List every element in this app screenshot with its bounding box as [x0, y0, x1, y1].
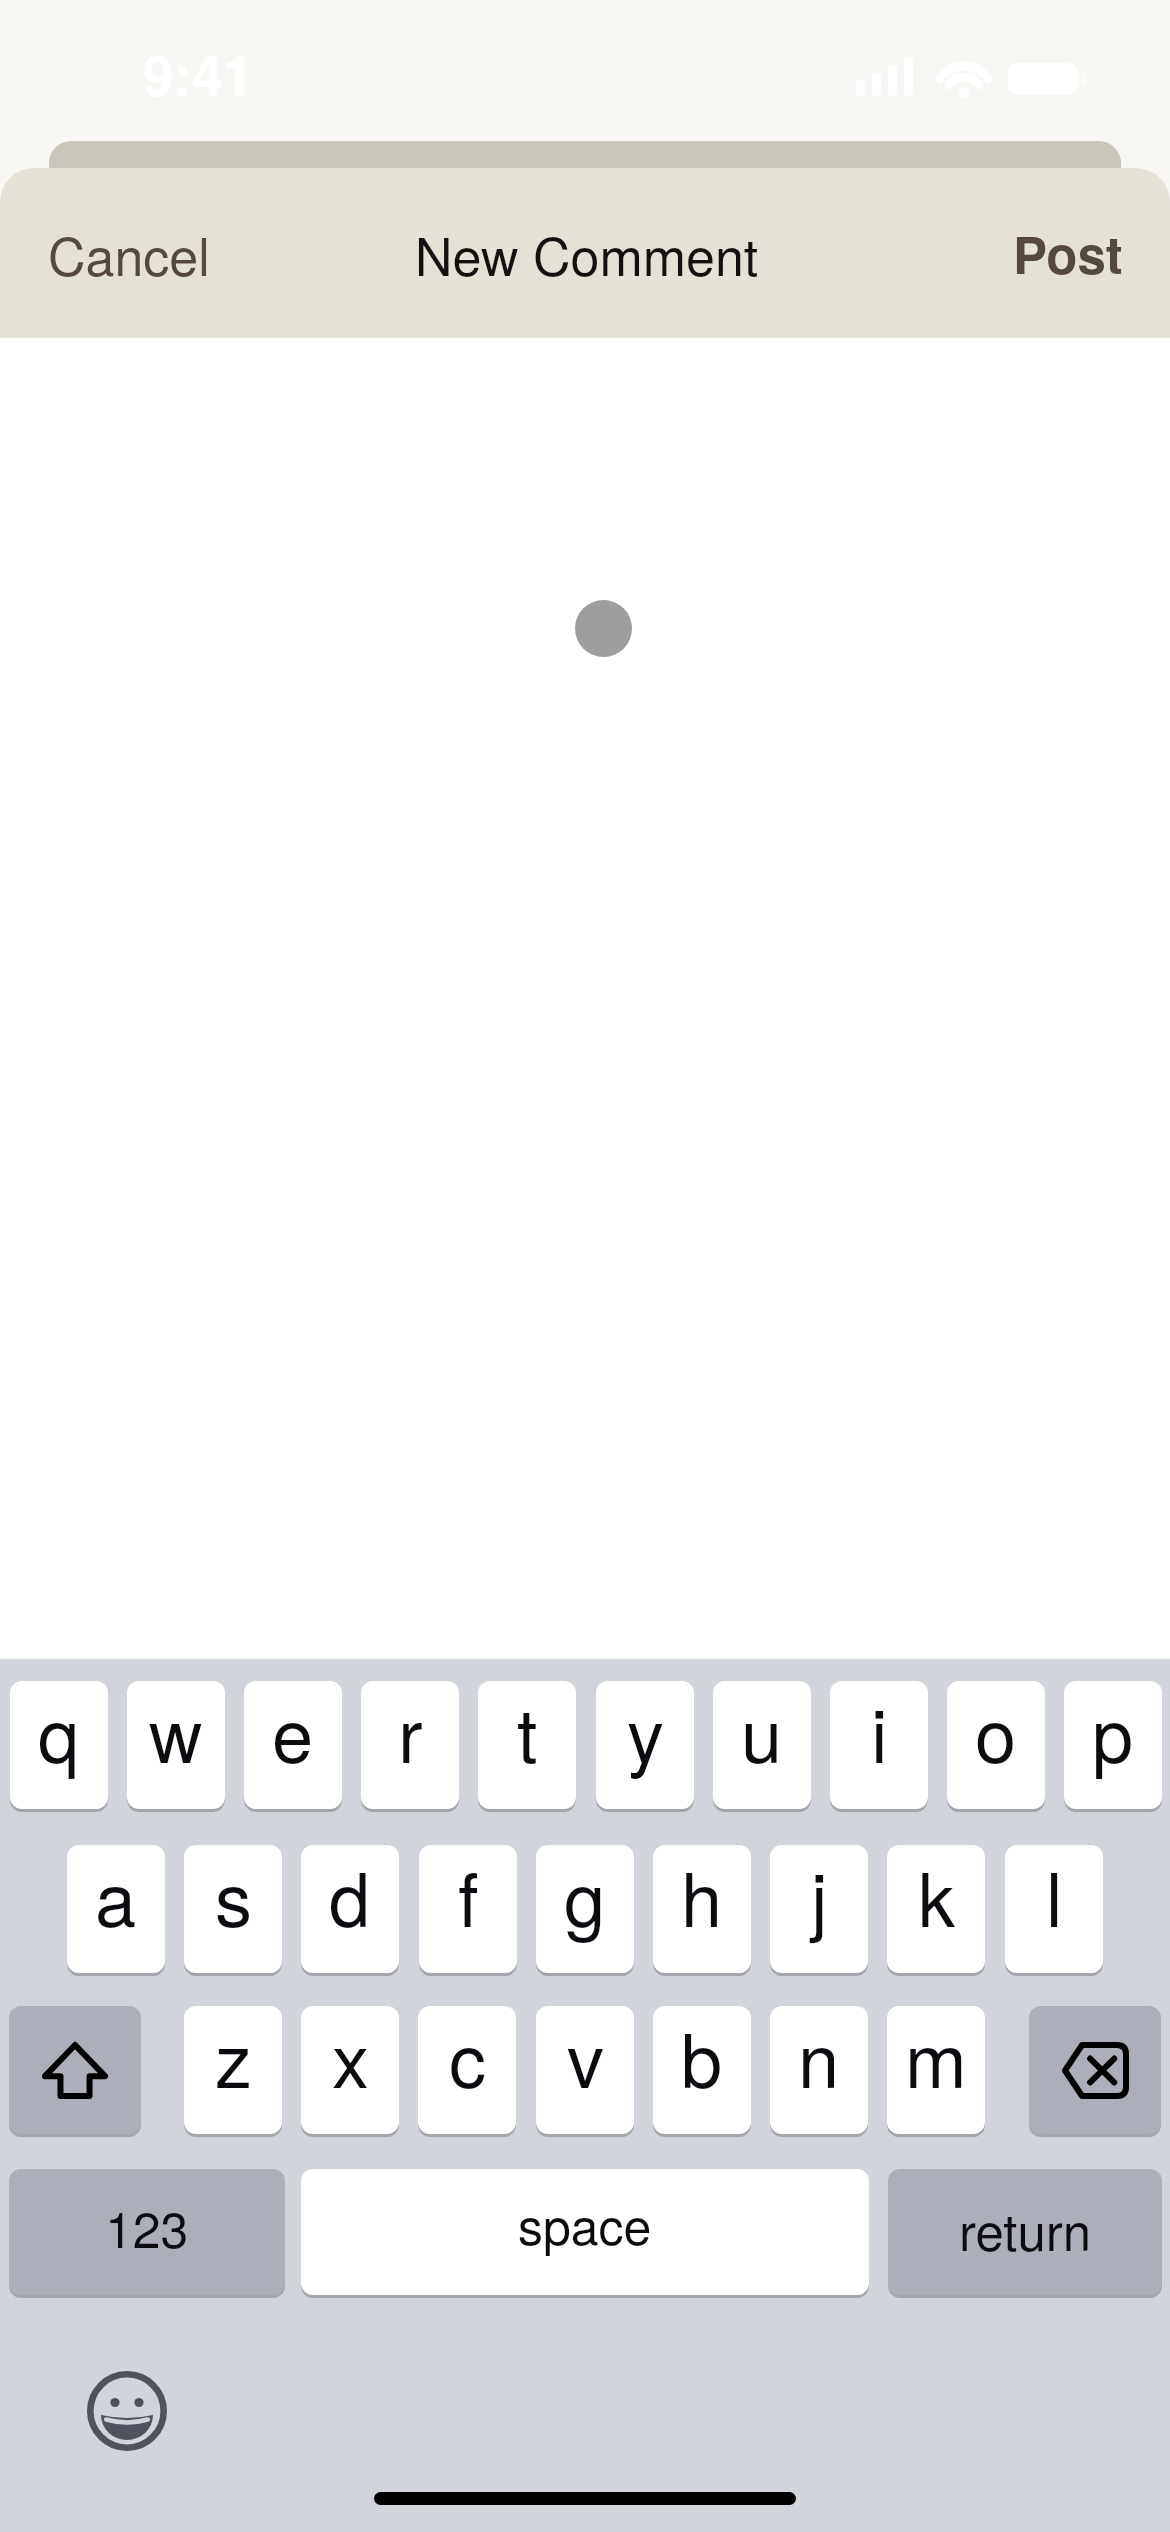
- button[interactable]: n: [770, 2006, 868, 2134]
- staticText: n: [798, 2006, 840, 2109]
- button[interactable]: return: [888, 2169, 1162, 2295]
- staticText: l: [1046, 1845, 1063, 1948]
- staticText: z: [215, 2006, 252, 2109]
- staticText: m: [905, 2006, 967, 2109]
- staticText: r: [398, 1681, 423, 1784]
- staticText: 9:41: [143, 34, 254, 113]
- staticText: f: [458, 1845, 479, 1948]
- button[interactable]: Cancel: [21, 198, 237, 308]
- staticText: a: [95, 1845, 137, 1948]
- staticText: Post: [1013, 217, 1123, 290]
- button[interactable]: f: [419, 1845, 517, 1973]
- staticText: i: [871, 1681, 888, 1784]
- staticText: o: [975, 1681, 1017, 1784]
- button[interactable]: g: [536, 1845, 634, 1973]
- button[interactable]: k: [887, 1845, 985, 1973]
- staticText: space: [518, 2188, 652, 2260]
- button[interactable]: q: [10, 1681, 108, 1809]
- button[interactable]: d: [301, 1845, 399, 1973]
- button[interactable]: c: [418, 2006, 516, 2134]
- staticText: u: [741, 1681, 783, 1784]
- button[interactable]: space: [301, 2169, 869, 2295]
- staticText: Cancel: [48, 216, 210, 290]
- staticText: q: [38, 1681, 80, 1784]
- staticText: t: [517, 1681, 538, 1784]
- button[interactable]: h: [653, 1845, 751, 1973]
- staticText: s: [215, 1845, 252, 1948]
- button[interactable]: z: [184, 2006, 282, 2134]
- staticText: 123: [105, 2191, 189, 2263]
- button[interactable]: i: [830, 1681, 928, 1809]
- staticText: j: [811, 1845, 828, 1948]
- staticText: h: [681, 1845, 723, 1948]
- staticText: e: [272, 1681, 314, 1784]
- staticText: v: [567, 2006, 604, 2109]
- staticText: return: [959, 2192, 1092, 2265]
- button[interactable]: Post: [973, 198, 1163, 308]
- staticText: c: [449, 2006, 486, 2109]
- staticText: x: [332, 2006, 369, 2109]
- button[interactable]: Backspace: [1029, 2006, 1161, 2134]
- button[interactable]: 123: [9, 2169, 285, 2295]
- button[interactable]: x: [301, 2006, 399, 2134]
- button[interactable]: a: [67, 1845, 165, 1973]
- staticText: y: [627, 1681, 664, 1784]
- staticText: p: [1092, 1681, 1134, 1784]
- staticText: g: [564, 1845, 606, 1948]
- button[interactable]: v: [536, 2006, 634, 2134]
- staticText: New Comment: [415, 216, 759, 290]
- button[interactable]: u: [713, 1681, 811, 1809]
- staticText: b: [681, 2006, 723, 2109]
- button[interactable]: l: [1005, 1845, 1103, 1973]
- staticText: d: [329, 1845, 371, 1948]
- button[interactable]: Emoji keyboard: [87, 2371, 167, 2451]
- staticText: w: [149, 1681, 203, 1784]
- button[interactable]: p: [1064, 1681, 1162, 1809]
- button[interactable]: t: [478, 1681, 576, 1809]
- button[interactable]: s: [184, 1845, 282, 1973]
- button[interactable]: j: [770, 1845, 868, 1973]
- button[interactable]: Shift: [9, 2006, 141, 2134]
- staticText: k: [918, 1845, 955, 1948]
- button[interactable]: o: [947, 1681, 1045, 1809]
- button[interactable]: b: [653, 2006, 751, 2134]
- button[interactable]: w: [127, 1681, 225, 1809]
- button[interactable]: r: [361, 1681, 459, 1809]
- button[interactable]: y: [596, 1681, 694, 1809]
- button[interactable]: e: [244, 1681, 342, 1809]
- button[interactable]: m: [887, 2006, 985, 2134]
